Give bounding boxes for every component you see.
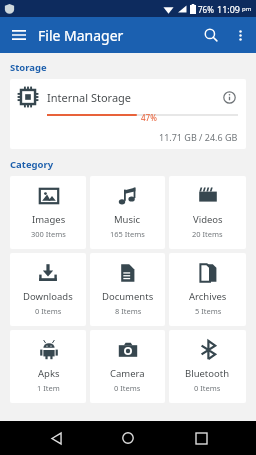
button[interactable]: Documents bbox=[90, 253, 165, 326]
button[interactable]: Camera bbox=[90, 330, 165, 403]
staticText: 11:09 bbox=[217, 3, 241, 15]
staticText: Downloads bbox=[23, 290, 73, 303]
button[interactable]: Search bbox=[196, 20, 226, 50]
button[interactable]: Archives bbox=[169, 253, 246, 326]
button[interactable]: Videos bbox=[169, 176, 246, 249]
staticText: pm bbox=[242, 5, 252, 13]
staticText: Archives bbox=[189, 290, 227, 303]
button[interactable]: Back bbox=[39, 421, 73, 455]
staticText: 47% bbox=[141, 112, 157, 123]
staticText: 1 Item bbox=[37, 383, 60, 393]
button[interactable]: Open navigation menu bbox=[5, 21, 33, 49]
staticText: 165 Items bbox=[110, 229, 145, 239]
staticText: 0 Items bbox=[194, 383, 221, 393]
button[interactable]: Internal Storage bbox=[10, 79, 246, 149]
button[interactable]: Images bbox=[10, 176, 86, 249]
staticText: Music bbox=[114, 213, 141, 226]
button[interactable]: Bluetooth bbox=[169, 330, 246, 403]
staticText: Images bbox=[32, 213, 66, 226]
staticText: Category bbox=[10, 158, 54, 171]
staticText: 5 Items bbox=[195, 306, 222, 316]
staticText: Videos bbox=[193, 213, 223, 226]
staticText: Internal Storage bbox=[47, 90, 132, 105]
staticText: 0 Items bbox=[114, 383, 141, 393]
staticText: 11.71 GB / 24.6 GB bbox=[159, 131, 238, 143]
staticText: Bluetooth bbox=[185, 367, 230, 380]
staticText: Storage bbox=[10, 61, 47, 74]
button[interactable]: Storage info bbox=[220, 88, 238, 106]
staticText: Camera bbox=[110, 367, 145, 380]
staticText: Apks bbox=[38, 367, 60, 380]
staticText: 76% bbox=[198, 4, 214, 15]
staticText: 0 Items bbox=[35, 306, 62, 316]
button[interactable]: Recent apps bbox=[184, 421, 218, 455]
staticText: 8 Items bbox=[115, 306, 142, 316]
staticText: Documents bbox=[102, 290, 154, 303]
button[interactable]: Music bbox=[90, 176, 165, 249]
button[interactable]: Downloads bbox=[10, 253, 86, 326]
button[interactable]: More options bbox=[226, 21, 254, 49]
staticText: 300 Items bbox=[31, 229, 66, 239]
staticText: File Manager bbox=[38, 26, 124, 45]
staticText: 20 Items bbox=[192, 229, 223, 239]
button[interactable]: Home bbox=[111, 421, 145, 455]
button[interactable]: Apks bbox=[10, 330, 86, 403]
